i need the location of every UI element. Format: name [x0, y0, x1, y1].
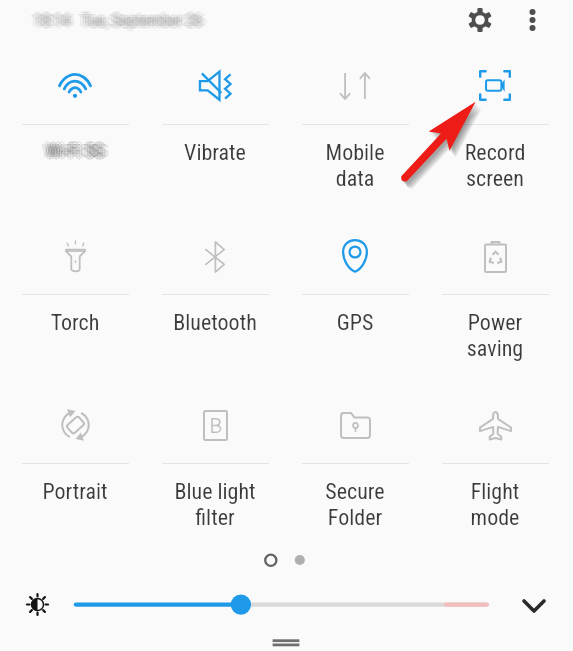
button[interactable]: Portrait: [5, 379, 145, 549]
staticText: Record screen: [426, 140, 564, 192]
staticText: Wi-Fi 5G: [49, 140, 108, 161]
staticText: Secure Folder: [286, 479, 424, 531]
button[interactable]: Torch: [5, 210, 145, 380]
staticText: 18:14 Tue, September 26: [32, 13, 201, 32]
button[interactable]: GPS: [285, 210, 425, 380]
button[interactable]: Blue light filter: [145, 379, 285, 549]
staticText: Wi-Fi 5G: [46, 140, 105, 161]
staticText: Mobile data: [286, 140, 424, 192]
button[interactable]: Power saving: [425, 210, 565, 380]
button[interactable]: Secure Folder: [285, 379, 425, 549]
button[interactable]: Brightness: [68, 588, 494, 621]
staticText: 18:14 Tue, September 26: [32, 9, 201, 28]
staticText: 18:14 Tue, September 26: [34, 11, 203, 30]
staticText: 18:14 Tue, September 26: [34, 14, 203, 33]
button[interactable]: Vibrate: [145, 40, 285, 210]
button[interactable]: Mobile data: [285, 40, 425, 210]
staticText: Flight mode: [426, 479, 564, 531]
staticText: Wi-Fi 5G: [43, 140, 102, 161]
staticText: Wi-Fi 5G: [46, 143, 105, 164]
staticText: Wi-Fi 5G: [41, 140, 100, 161]
button[interactable]: Settings: [457, 0, 502, 42]
staticText: Wi-Fi 5G: [46, 137, 105, 158]
staticText: Blue light filter: [146, 479, 284, 531]
staticText: 18:14 Tue, September 26: [39, 11, 208, 30]
staticText: 18:14 Tue, September 26: [29, 11, 198, 30]
staticText: 18:14 Tue, September 26: [36, 13, 205, 32]
button[interactable]: Expand quick settings: [513, 585, 555, 627]
staticText: Wi-Fi 5G: [44, 142, 103, 163]
button[interactable]: Wi-Fi 5G: [5, 40, 145, 210]
staticText: Bluetooth: [146, 310, 284, 336]
staticText: 18:14 Tue, September 26: [34, 8, 203, 27]
staticText: GPS: [286, 310, 424, 336]
staticText: Wi-Fi 5G: [48, 138, 107, 159]
staticText: Power saving: [426, 310, 564, 362]
staticText: 18:14 Tue, September 26: [36, 9, 205, 28]
staticText: Wi-Fi 5G: [44, 138, 103, 159]
staticText: 18:14 Tue, September 26: [31, 11, 200, 30]
staticText: Portrait: [6, 479, 144, 505]
button[interactable]: Flight mode: [425, 379, 565, 549]
button[interactable]: Record screen: [425, 40, 565, 210]
staticText: Wi-Fi 5G: [51, 140, 110, 161]
button[interactable]: Bluetooth: [145, 210, 285, 380]
staticText: Torch: [6, 310, 144, 336]
button[interactable]: More options: [510, 0, 555, 42]
staticText: 18:14 Tue, September 26: [37, 11, 206, 30]
staticText: Wi-Fi 5G: [48, 142, 107, 163]
staticText: Vibrate: [146, 140, 284, 166]
